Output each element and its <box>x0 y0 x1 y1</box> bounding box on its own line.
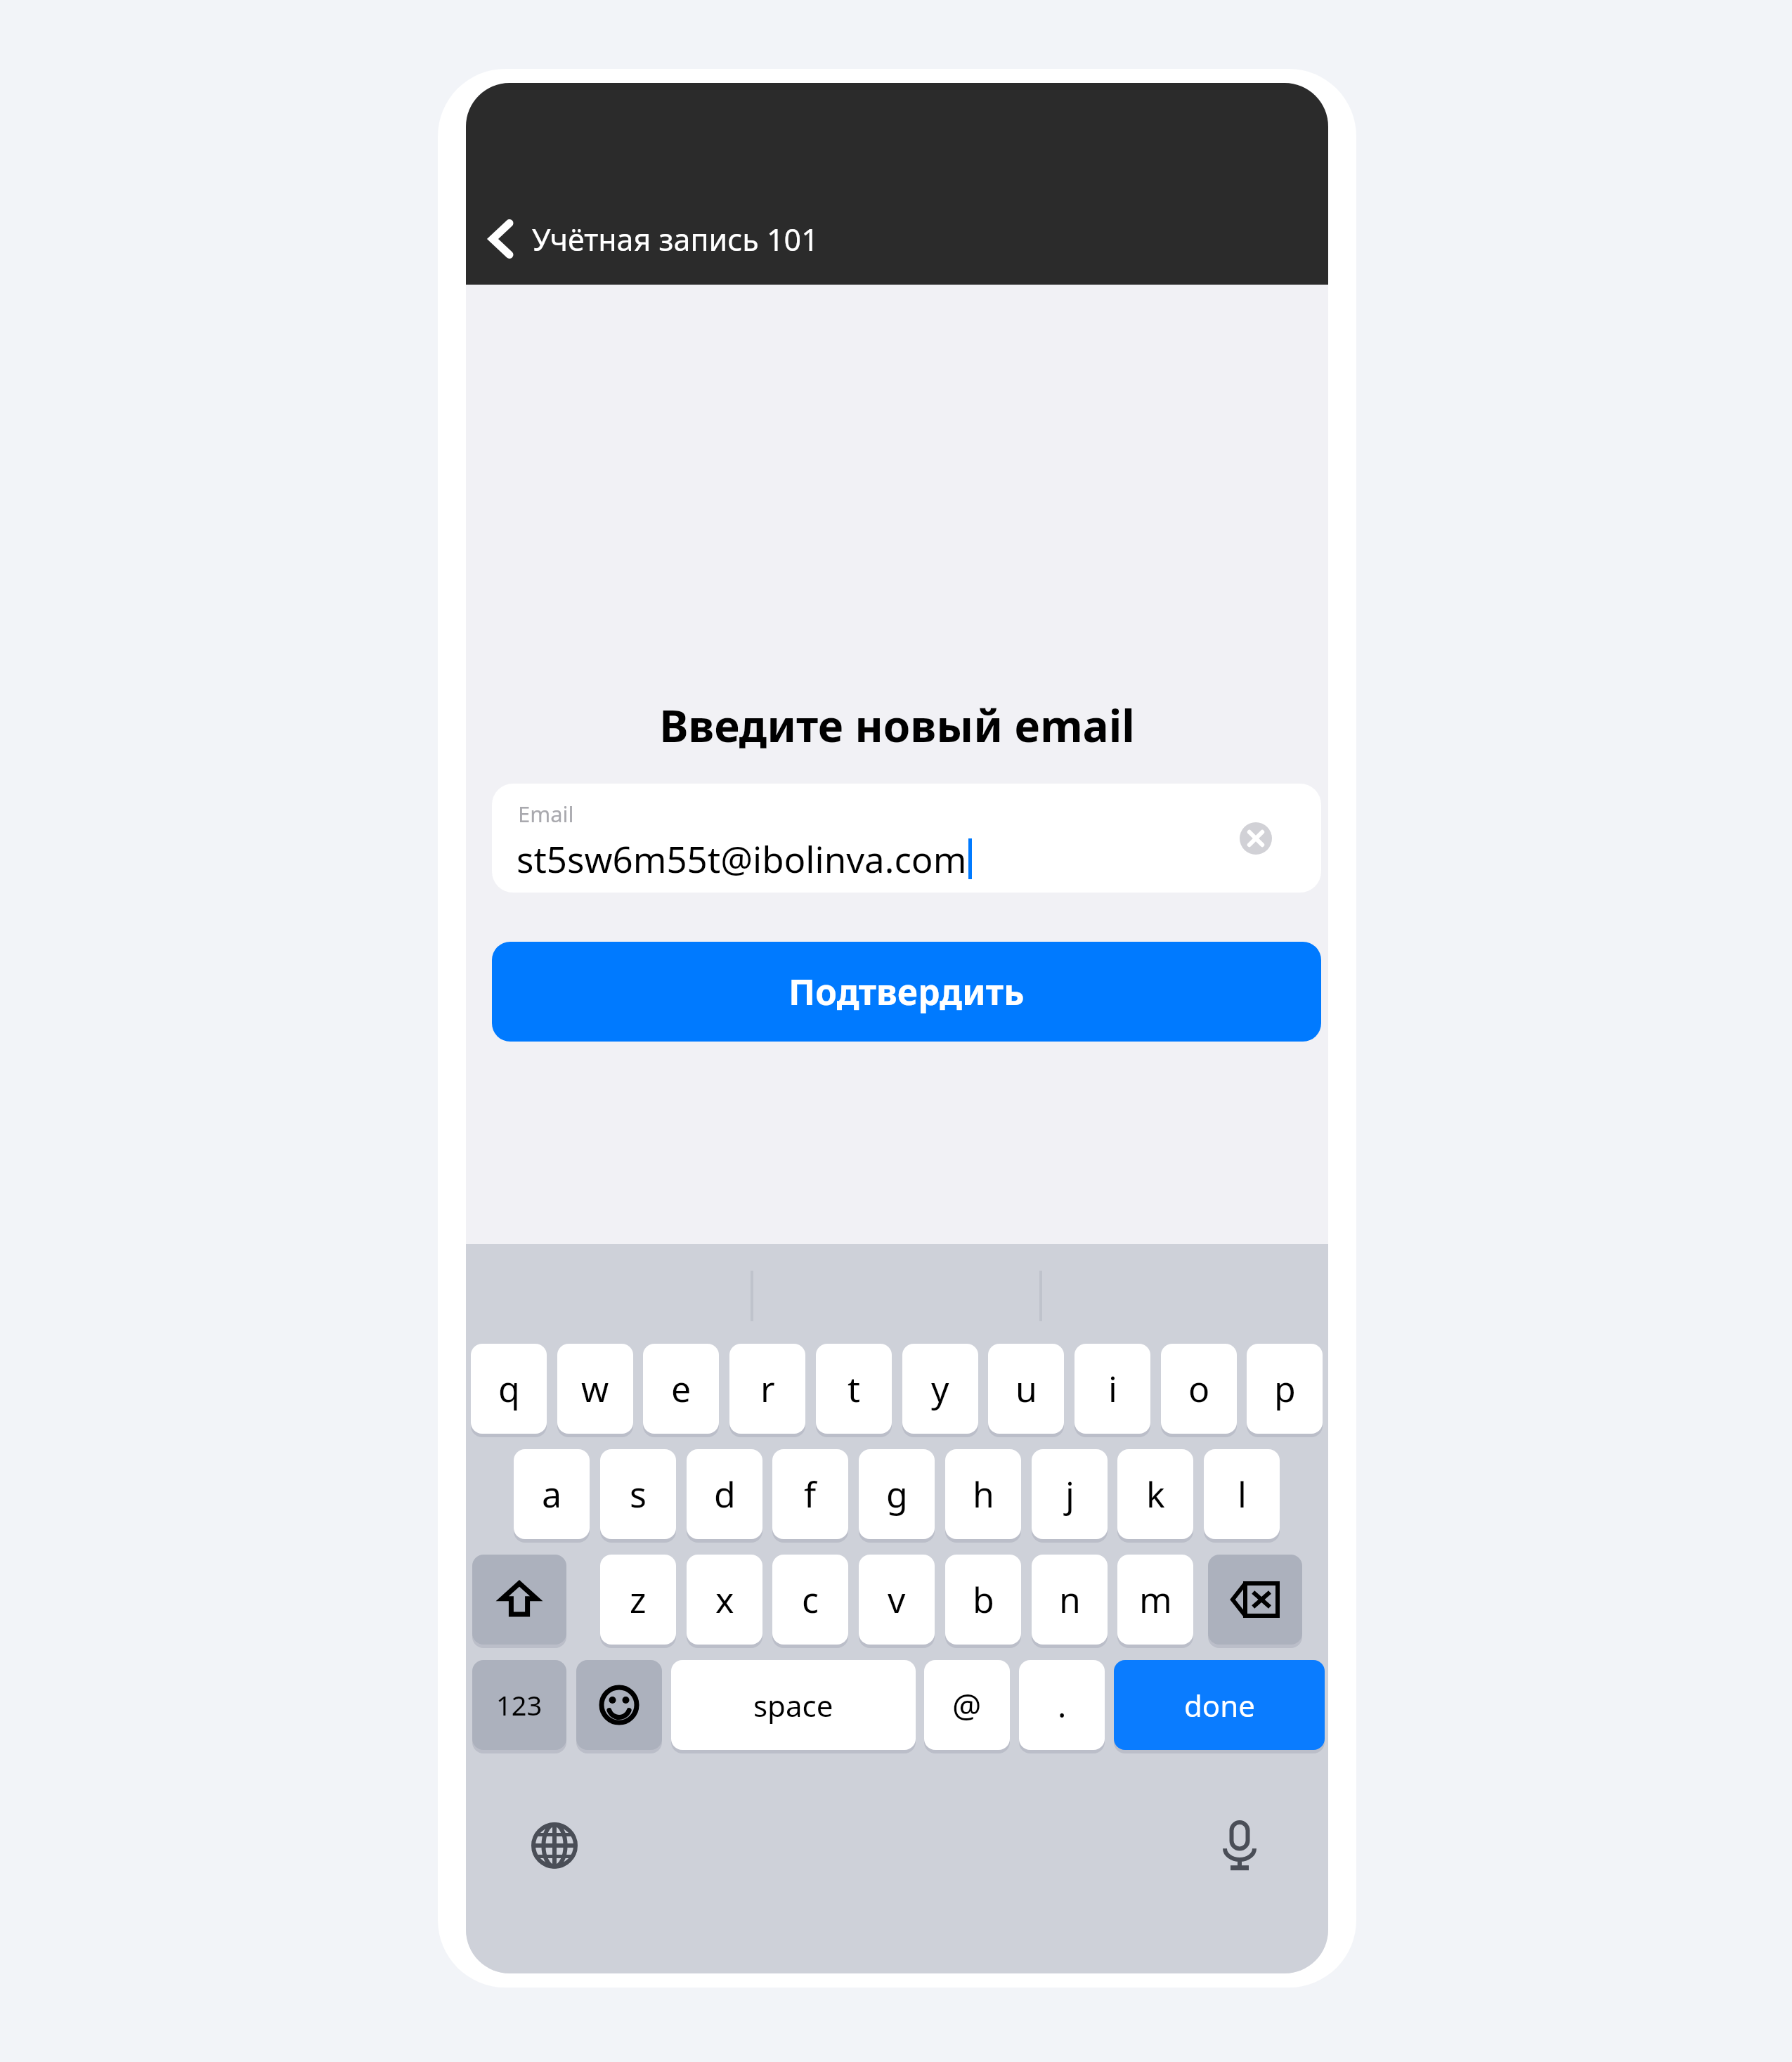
staticText: d <box>714 1470 736 1518</box>
staticText: f <box>804 1470 817 1518</box>
staticText: x <box>715 1576 734 1623</box>
button[interactable]: o <box>1161 1344 1237 1434</box>
staticText: q <box>498 1365 520 1413</box>
staticText: Учётная запись 101 <box>532 219 819 260</box>
button[interactable]: Emoji <box>576 1660 662 1750</box>
staticText: Введите новый email <box>659 696 1135 755</box>
button[interactable]: space <box>671 1660 916 1750</box>
button[interactable]: k <box>1117 1449 1193 1539</box>
staticText: j <box>1065 1470 1074 1518</box>
staticText: r <box>760 1365 775 1413</box>
staticText: c <box>802 1576 819 1623</box>
button[interactable]: @ <box>924 1660 1010 1750</box>
staticText: e <box>671 1365 692 1413</box>
button[interactable]: m <box>1117 1555 1193 1645</box>
staticText: done <box>1184 1685 1255 1725</box>
button[interactable]: x <box>687 1555 762 1645</box>
button[interactable]: a <box>514 1449 590 1539</box>
button[interactable]: d <box>687 1449 762 1539</box>
button[interactable]: y <box>902 1344 978 1434</box>
button[interactable]: s <box>600 1449 676 1539</box>
staticText: o <box>1188 1365 1210 1413</box>
staticText: Email <box>518 799 574 829</box>
button[interactable]: p <box>1247 1344 1323 1434</box>
staticText: v <box>888 1576 906 1623</box>
staticText: space <box>753 1685 833 1725</box>
button[interactable]: h <box>945 1449 1021 1539</box>
button[interactable]: u <box>988 1344 1064 1434</box>
button[interactable]: r <box>729 1344 805 1434</box>
staticText: s <box>630 1470 647 1518</box>
button[interactable]: Email <box>492 784 1321 893</box>
button[interactable]: Backspace <box>1208 1555 1302 1645</box>
button[interactable]: q <box>471 1344 547 1434</box>
staticText: y <box>931 1365 949 1413</box>
staticText: g <box>886 1470 908 1518</box>
button[interactable]: w <box>557 1344 633 1434</box>
staticText: l <box>1238 1470 1247 1518</box>
staticText: k <box>1146 1470 1165 1518</box>
button[interactable]: g <box>859 1449 935 1539</box>
button[interactable]: . <box>1019 1660 1105 1750</box>
staticText: @ <box>952 1683 982 1727</box>
staticText: m <box>1139 1576 1172 1623</box>
button[interactable]: n <box>1032 1555 1108 1645</box>
staticText: w <box>581 1365 609 1413</box>
staticText: Подтвердить <box>788 968 1025 1016</box>
button[interactable]: Учётная запись 101 <box>466 193 836 285</box>
button[interactable]: Change keyboard language <box>525 1816 584 1875</box>
staticText: h <box>973 1470 994 1518</box>
button[interactable]: Shift <box>472 1555 566 1645</box>
staticText: 123 <box>496 1687 543 1723</box>
button[interactable]: Voice input <box>1210 1816 1269 1875</box>
staticText: u <box>1015 1365 1037 1413</box>
button[interactable]: f <box>772 1449 848 1539</box>
button[interactable]: v <box>859 1555 935 1645</box>
staticText: a <box>542 1470 562 1518</box>
button[interactable]: e <box>643 1344 719 1434</box>
button[interactable]: done <box>1114 1660 1325 1750</box>
staticText: i <box>1108 1365 1117 1413</box>
button[interactable]: l <box>1204 1449 1280 1539</box>
staticText: p <box>1274 1365 1296 1413</box>
staticText: z <box>630 1576 647 1623</box>
staticText: t <box>848 1365 861 1413</box>
button[interactable]: j <box>1032 1449 1108 1539</box>
staticText: st5sw6m55t@ibolinva.com <box>517 834 967 883</box>
staticText: n <box>1059 1576 1081 1623</box>
staticText: . <box>1058 1683 1067 1727</box>
button[interactable]: i <box>1074 1344 1150 1434</box>
staticText: b <box>973 1576 994 1623</box>
button[interactable]: t <box>816 1344 892 1434</box>
button[interactable]: c <box>772 1555 848 1645</box>
button[interactable]: Подтвердить <box>492 942 1321 1042</box>
button[interactable]: b <box>945 1555 1021 1645</box>
button[interactable]: Clear text <box>1240 822 1272 855</box>
button[interactable]: 123 <box>472 1660 566 1750</box>
button[interactable]: z <box>600 1555 676 1645</box>
